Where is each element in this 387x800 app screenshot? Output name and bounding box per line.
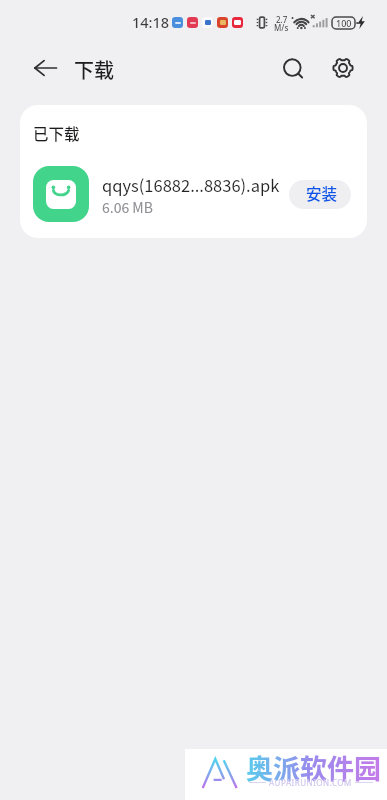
staticText: qqys(16882...8836).apk [102,173,280,197]
staticText: M/s [274,22,289,33]
staticText: 100 [336,17,352,29]
staticText: 6.06 MB [102,197,153,217]
staticText: 奥派软件园 [246,748,381,787]
staticText: AUPAIRUNION.COM [269,777,352,788]
button[interactable]: Back [23,46,67,90]
staticText: 下载 [74,55,114,84]
button[interactable]: qqys(16882...8836).apk [20,161,367,233]
button[interactable]: Settings [321,46,365,90]
staticText: 2.7 [276,14,288,25]
button[interactable]: Search [272,47,316,91]
staticText: 安装 [306,182,338,204]
staticText: 14:18 [132,12,170,32]
staticText: 已下载 [33,122,80,144]
button[interactable]: 安装 [289,180,351,209]
